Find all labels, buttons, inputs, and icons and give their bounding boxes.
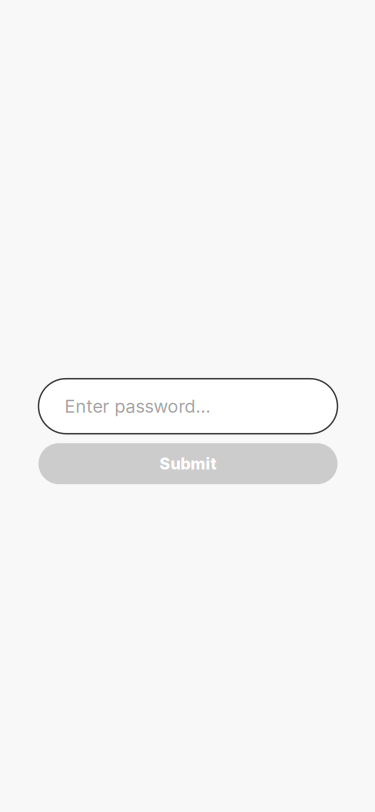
staticText: Enter password... — [64, 395, 210, 417]
staticText: Submit — [159, 454, 216, 473]
button[interactable]: Enter password... — [38, 379, 337, 434]
button[interactable]: Submit — [38, 443, 337, 484]
